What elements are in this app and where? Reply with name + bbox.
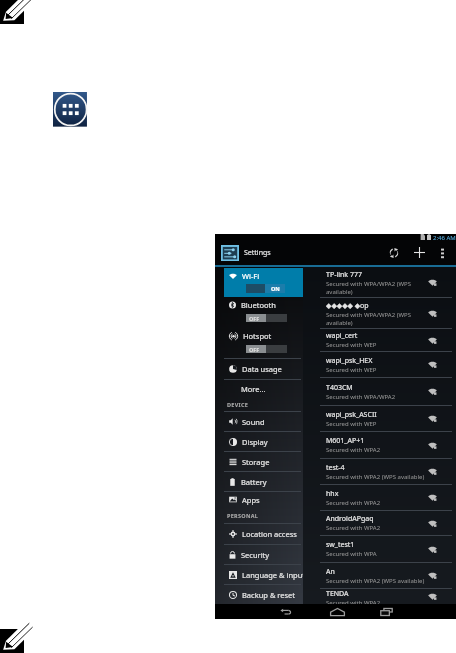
button[interactable]: TENDA [303,589,456,604]
staticText: wapi_psk_HEX [326,356,373,366]
button[interactable]: wapi_psk_HEX [303,352,456,377]
staticText: Secured with WEP [326,366,428,374]
staticText: AndroidAPgaq [326,514,374,524]
button[interactable]: Storage [215,452,303,471]
staticText: Secured with WPA2 [326,524,428,532]
button[interactable]: Location access [215,524,303,544]
staticText: Storage [242,457,270,467]
button[interactable]: Language & input [215,565,303,584]
button[interactable]: AndroidAPgaq [303,511,456,535]
staticText: Secured with WPA2 [326,499,428,507]
button[interactable]: Backup & reset [215,585,303,604]
staticText: Language & input [242,570,303,580]
staticText: wapi_cert [326,331,358,341]
button[interactable]: Add network [408,240,430,265]
button[interactable]: Wi-Fi [224,268,303,297]
button[interactable]: sw_test1 [303,536,456,562]
staticText: Secured with WEP [326,341,428,349]
button[interactable]: More... [215,380,303,398]
staticText: M601_AP+1 [326,436,365,446]
staticText: Secured with WPA2 [326,599,428,604]
staticText: Secured with WEP [326,420,428,428]
staticText: wapi_psk_ASCII [326,410,377,420]
button[interactable]: T403CM [303,378,456,405]
button[interactable]: hhx [303,485,456,510]
button[interactable]: Apps [215,492,303,507]
staticText: Secured with WPA/WPA2 [326,393,428,401]
staticText: ◆◆◆◆◆ ◆op [326,301,369,311]
staticText: Sound [242,417,265,427]
staticText: test-4 [326,463,345,473]
staticText: An [326,567,335,577]
button[interactable]: test-4 [303,459,456,484]
staticText: PERSONAL [227,512,259,519]
staticText: 2:46 AM [433,234,456,240]
staticText: Battery [241,477,267,487]
staticText: Backup & reset [242,590,296,600]
button[interactable]: OFF [246,345,287,353]
staticText: DEVICE [227,401,249,408]
staticText: Hotspot [243,331,272,341]
staticText: TENDA [326,589,349,599]
staticText: Secured with WPA/WPA2 (WPS available) [326,311,414,326]
button[interactable]: ◆◆◆◆◆ ◆op [303,298,456,328]
staticText: Security [241,550,270,560]
staticText: Secured with WPA [326,550,428,558]
staticText: OFF [249,315,260,322]
staticText: hhx [326,489,339,499]
staticText: Apps [242,495,260,505]
staticText: More... [241,384,266,394]
button[interactable]: wapi_cert [303,329,456,351]
button[interactable]: More options [432,240,452,265]
staticText: T403CM [326,383,353,393]
button[interactable]: Scan [383,240,405,265]
staticText: Secured with WPA2 (WPS available) [326,473,428,481]
button[interactable]: wapi_psk_ASCII [303,406,456,431]
staticText: TP-link 777 [326,270,362,280]
button[interactable]: Battery [215,472,303,491]
staticText: ON [271,285,280,292]
staticText: Data usage [242,364,282,374]
button[interactable]: OFF [246,314,287,322]
staticText: sw_test1 [326,540,355,550]
staticText: OFF [249,346,260,353]
button[interactable]: M601_AP+1 [303,432,456,458]
button[interactable]: All apps [53,92,88,127]
button[interactable]: TP-link 777 [303,267,456,297]
button[interactable]: Hotspot [215,328,303,358]
staticText: Secured with WPA2 [326,446,428,454]
button[interactable]: An [303,563,456,588]
staticText: Wi-Fi [242,271,260,281]
staticText: Bluetooth [241,300,276,310]
button[interactable]: Security [215,545,303,564]
button[interactable]: Sound [215,412,303,431]
staticText: Secured with WPA/WPA2 (WPS available) [326,280,414,295]
button[interactable]: Recent apps [371,604,401,619]
button[interactable]: Home [322,604,352,619]
staticText: Display [242,437,268,447]
staticText: Location access [242,529,297,539]
button[interactable]: Data usage [215,359,303,379]
button[interactable]: Bluetooth [215,297,303,328]
button[interactable]: Display [215,432,303,451]
button[interactable]: ON [246,284,285,293]
staticText: Settings [244,248,271,258]
button[interactable]: Back [271,604,301,619]
staticText: Secured with WPA2 (WPS available) [326,577,428,585]
